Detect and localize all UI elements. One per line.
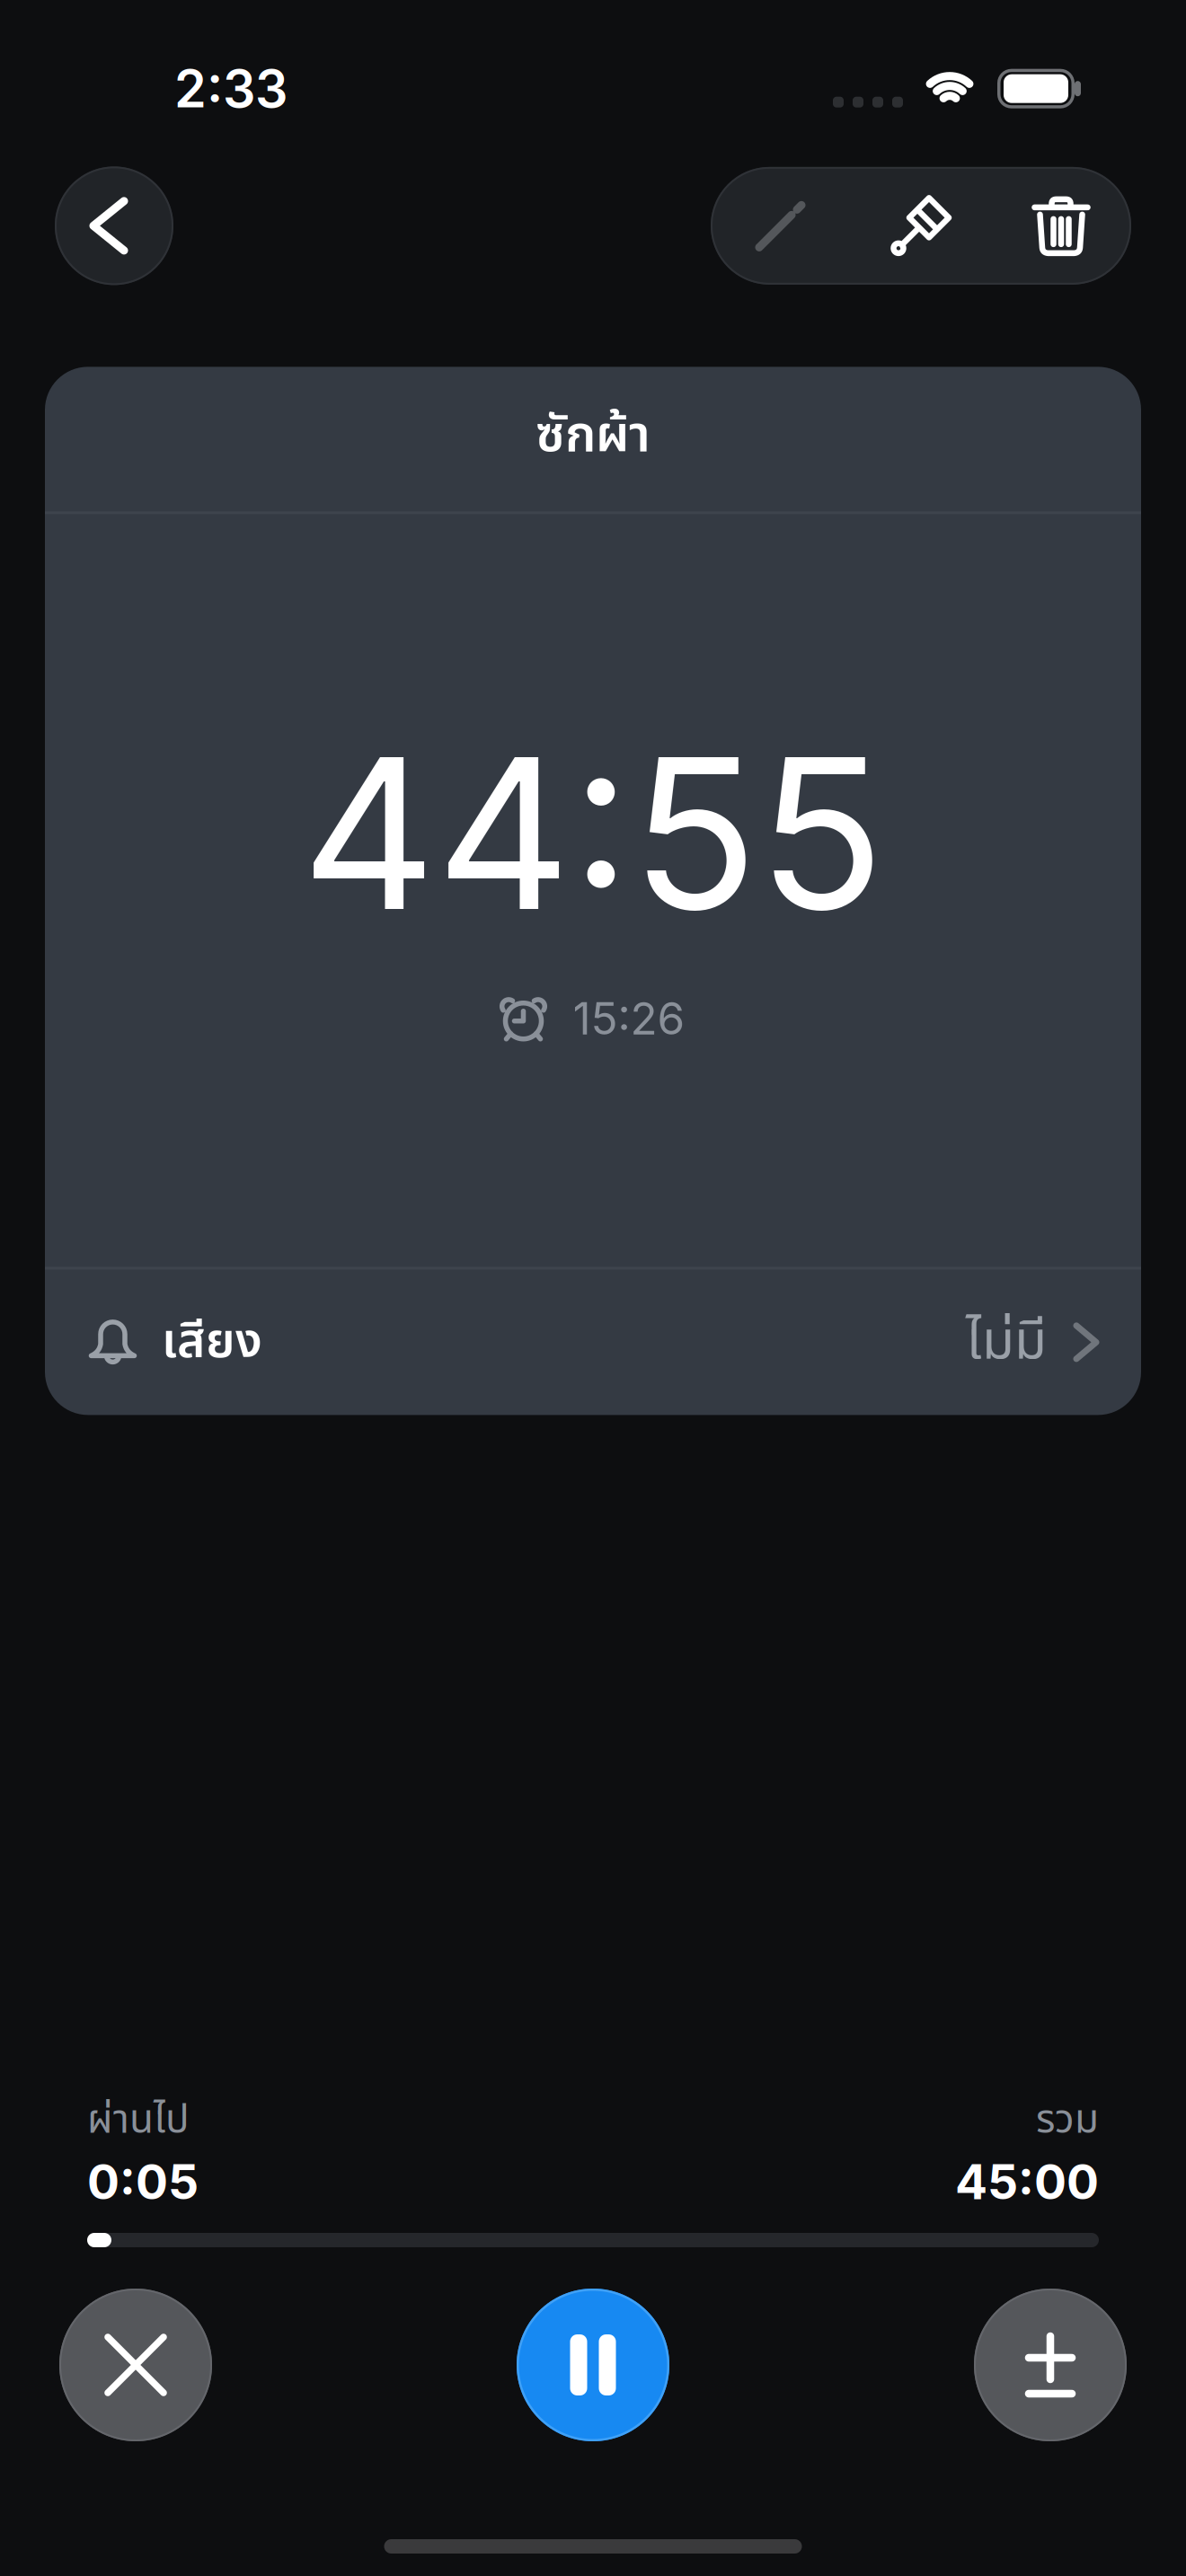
button[interactable]: Delete	[991, 167, 1131, 285]
staticText: 45:00	[955, 2153, 1099, 2211]
staticText: รวม	[1036, 2091, 1099, 2151]
staticText: 2:33	[174, 57, 288, 120]
staticText: เสียง	[162, 1306, 262, 1378]
button[interactable]: Back	[55, 167, 173, 285]
button[interactable]: Cancel	[59, 2289, 212, 2441]
staticText: 15:26	[573, 992, 685, 1045]
button[interactable]: Pause	[517, 2289, 669, 2441]
staticText: ผ่านไป	[87, 2091, 190, 2151]
button[interactable]: เสียง	[45, 1269, 1141, 1415]
staticText: 44:55	[301, 707, 885, 959]
button[interactable]: Edit	[711, 167, 851, 285]
button[interactable]: Appearance	[851, 167, 991, 285]
staticText: ไม่มี	[966, 1302, 1047, 1382]
staticText: ซักผ้า	[535, 398, 651, 474]
staticText: 0:05	[87, 2153, 199, 2211]
button[interactable]: Adjust time	[974, 2289, 1127, 2441]
